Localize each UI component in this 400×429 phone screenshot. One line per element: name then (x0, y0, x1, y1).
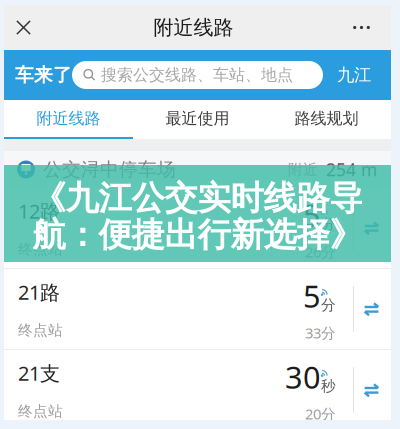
button[interactable]: 最近使用 (133, 100, 262, 139)
staticText: 最近使用 (165, 109, 229, 128)
button[interactable]: 21路 (4, 269, 391, 349)
button[interactable]: 21支 (4, 350, 391, 429)
staticText: 分 (321, 296, 336, 314)
staticText: 附近线路 (36, 109, 100, 128)
staticText: 航：便捷出行新选择》 (32, 214, 362, 255)
staticText: 搜索公交线路、车站、地点 (101, 65, 293, 85)
button[interactable]: 附近线路 (4, 100, 133, 139)
staticText: 分 (321, 215, 336, 233)
staticText: 26分 (305, 242, 336, 262)
button[interactable]: 关闭 (4, 5, 45, 50)
staticText: 九江 (337, 64, 371, 86)
staticText: 终点站 (18, 321, 63, 339)
button[interactable]: 九江 (337, 64, 371, 86)
button[interactable]: 更多 (339, 5, 391, 50)
staticText: 终点站 (18, 402, 63, 420)
staticText: 公交浔中停车场 (43, 158, 176, 181)
staticText: 路线规划 (294, 109, 358, 128)
staticText: 20分 (305, 404, 336, 424)
staticText: 车来了 (15, 63, 72, 86)
button[interactable]: 搜索公交线路、车站、地点 (72, 61, 323, 89)
button[interactable]: 路线规划 (262, 100, 391, 139)
button[interactable]: 12路 (4, 188, 391, 268)
staticText: 21路 (18, 279, 60, 305)
staticText: 33分 (305, 323, 336, 343)
staticText: 附近 (288, 160, 318, 178)
staticText: 5 (303, 194, 321, 235)
staticText: 终点站 (18, 240, 63, 258)
staticText: 30 (285, 356, 321, 397)
staticText: 《九江公交实时线路导 (32, 178, 362, 218)
staticText: 254 m (326, 158, 377, 181)
staticText: 12路 (18, 198, 60, 224)
staticText: 秒 (321, 377, 336, 395)
staticText: 21支 (18, 360, 60, 386)
staticText: 5 (303, 275, 321, 316)
staticText: 附近线路 (153, 15, 233, 40)
